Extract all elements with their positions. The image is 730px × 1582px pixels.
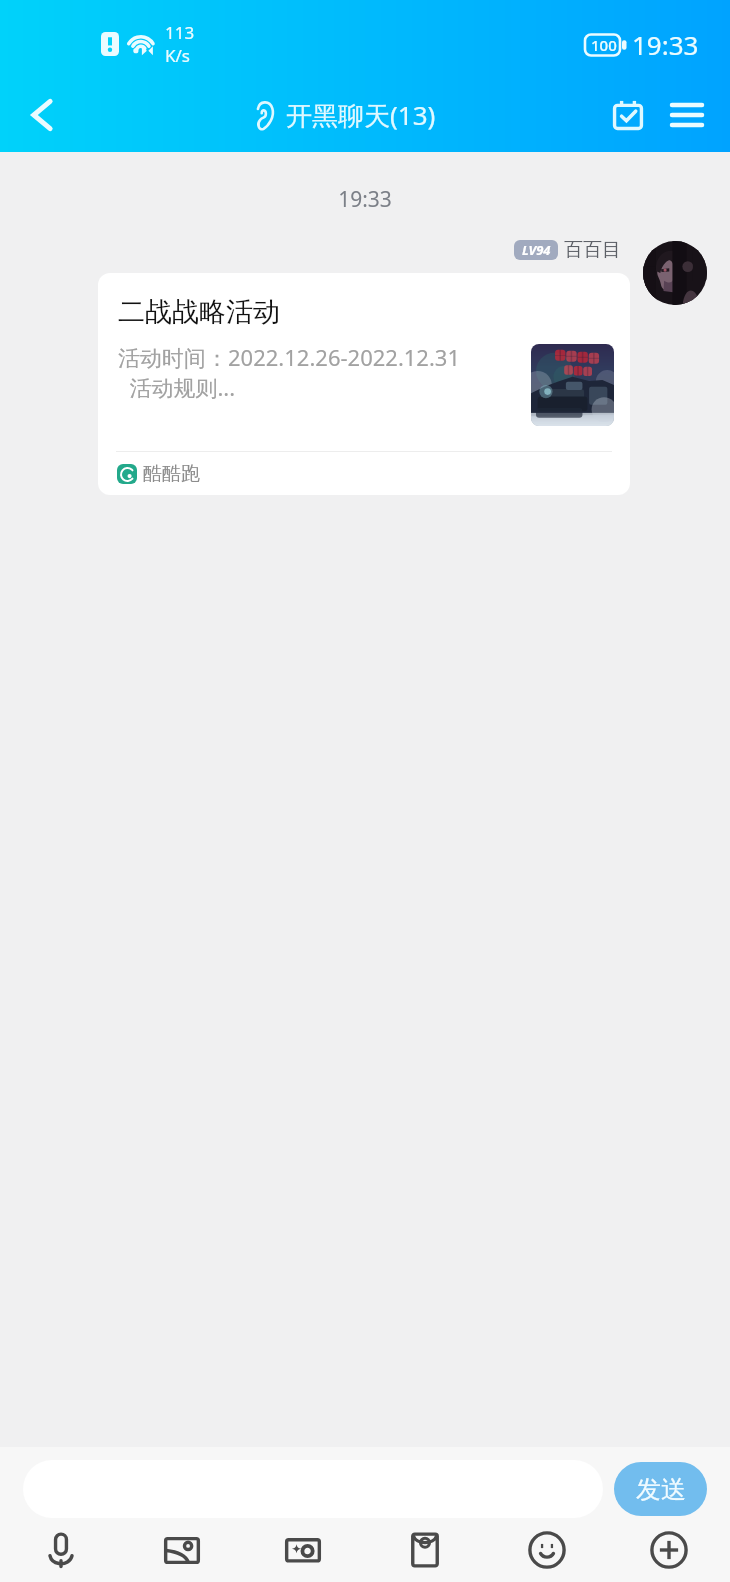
staticText: 113 bbox=[165, 21, 195, 44]
staticText: 开黑聊天(13) bbox=[286, 97, 436, 133]
staticText: 酷酷跑 bbox=[143, 462, 200, 486]
staticText: K/s bbox=[165, 44, 190, 67]
button[interactable]: Red packet bbox=[364, 1518, 486, 1582]
button[interactable]: Voice message bbox=[0, 1518, 121, 1582]
button[interactable]: Photo bbox=[121, 1518, 242, 1582]
button[interactable]: 发送 bbox=[614, 1462, 707, 1516]
staticText: 100 bbox=[591, 35, 617, 55]
button[interactable]: Emoji bbox=[486, 1518, 608, 1582]
button[interactable]: Menu bbox=[643, 78, 730, 152]
button[interactable]: More bbox=[608, 1518, 730, 1582]
staticText: 活动时间：2022.12.26-2022.12.31 bbox=[118, 342, 461, 372]
staticText: 百百目 bbox=[564, 238, 621, 262]
staticText: 发送 bbox=[636, 1474, 686, 1505]
staticText: LV94 bbox=[522, 241, 551, 259]
staticText: 19:33 bbox=[632, 27, 699, 62]
button[interactable]: Sticker bbox=[242, 1518, 364, 1582]
button[interactable]: Back bbox=[0, 78, 88, 152]
staticText: 19:33 bbox=[0, 185, 730, 214]
staticText: 活动规则... bbox=[118, 372, 236, 402]
button[interactable]: Avatar bbox=[643, 241, 707, 305]
button[interactable]: Group tasks bbox=[599, 78, 657, 152]
staticText: 二战战略活动 bbox=[118, 295, 280, 329]
button[interactable]: 二战战略活动 bbox=[98, 273, 630, 495]
